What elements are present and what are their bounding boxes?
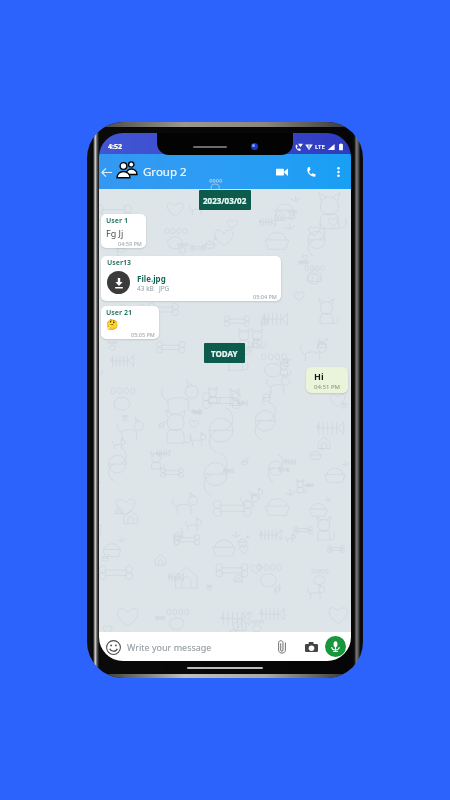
button[interactable]: User 1 [101, 214, 146, 248]
button[interactable]: User 21 [101, 306, 159, 339]
button[interactable]: Emoji [103, 637, 123, 657]
button[interactable]: Video call [270, 160, 294, 184]
staticText: TODAY [211, 348, 238, 359]
staticText: User 21 [106, 308, 132, 318]
staticText: Write your message [127, 641, 212, 653]
button[interactable]: Voice call [299, 160, 323, 184]
staticText: 4:52 [108, 142, 122, 152]
staticText: 2023/03/02 [203, 195, 247, 206]
staticText: 43 kB JPG [137, 284, 170, 293]
staticText: 🤔 [106, 319, 119, 331]
button[interactable]: User13 [101, 256, 281, 301]
staticText: 05:05 PM [131, 331, 155, 338]
staticText: 04:59 PM [118, 240, 142, 247]
staticText: 05:04 PM [253, 293, 277, 300]
staticText: Group 2 [143, 164, 187, 180]
button[interactable]: Hi [306, 367, 348, 393]
staticText: User13 [107, 258, 132, 268]
button[interactable]: Back [100, 157, 112, 187]
button[interactable]: Camera [302, 638, 320, 656]
staticText: Hi [314, 370, 324, 382]
button[interactable]: Record voice message [325, 636, 346, 657]
button[interactable]: Attach file [273, 638, 291, 656]
button[interactable]: More options [329, 159, 347, 185]
staticText: 04:51 PM [314, 383, 340, 391]
staticText: LTE [315, 143, 325, 151]
staticText: File.jpg [137, 273, 166, 284]
staticText: User 1 [106, 216, 128, 226]
staticText: Fg Jj [106, 227, 124, 239]
